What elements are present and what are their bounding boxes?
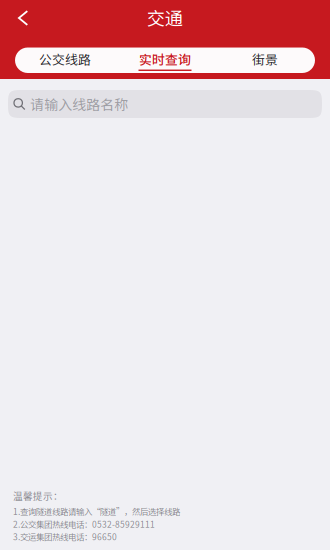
button[interactable]: 街景 — [215, 47, 315, 73]
staticText: 1.查询隧道线路请输入“隧道”，然后选择线路 — [13, 505, 180, 517]
staticText: 2.公交集团热线电话：0532-85929111 — [13, 518, 155, 530]
staticText: 交通 — [147, 4, 183, 30]
staticText: 温馨提示： — [13, 489, 63, 502]
staticText: 3.交运集团热线电话：96650 — [13, 530, 117, 543]
button[interactable]: 公交线路 — [15, 47, 115, 73]
staticText: 公交线路 — [39, 49, 91, 68]
button[interactable]: Back — [0, 0, 46, 36]
staticText: 实时查询 — [139, 49, 191, 68]
staticText: 请输入线路名称 — [30, 94, 128, 114]
staticText: 街景 — [252, 49, 278, 68]
button[interactable]: 实时查询 — [115, 47, 215, 73]
button[interactable]: 请输入线路名称 — [8, 90, 322, 118]
